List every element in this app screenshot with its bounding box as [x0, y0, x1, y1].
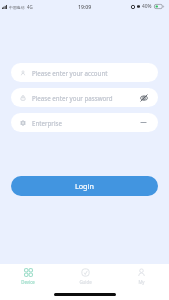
button[interactable]: Login	[11, 176, 158, 196]
staticText: Enterprise	[32, 119, 62, 127]
staticText: Please enter your password	[32, 94, 113, 102]
other: Show password	[140, 94, 148, 102]
button[interactable]: Please enter your password	[11, 88, 158, 107]
staticText: 19:09	[78, 3, 92, 10]
staticText: 40%	[142, 3, 152, 10]
button[interactable]: My	[118, 267, 164, 286]
staticText: Guide	[79, 279, 92, 285]
button[interactable]: Please enter your account	[11, 63, 158, 82]
button[interactable]: Guide	[62, 267, 108, 286]
staticText: My	[138, 279, 145, 285]
staticText: Login	[75, 181, 94, 191]
staticText: 4G	[27, 4, 33, 10]
button[interactable]: Device	[5, 267, 51, 286]
other: Select enterprise	[139, 118, 148, 127]
button[interactable]: Enterprise	[11, 113, 158, 132]
staticText: Device	[21, 279, 35, 285]
staticText: Please enter your account	[32, 69, 108, 77]
staticText: 中国电信	[9, 5, 25, 10]
